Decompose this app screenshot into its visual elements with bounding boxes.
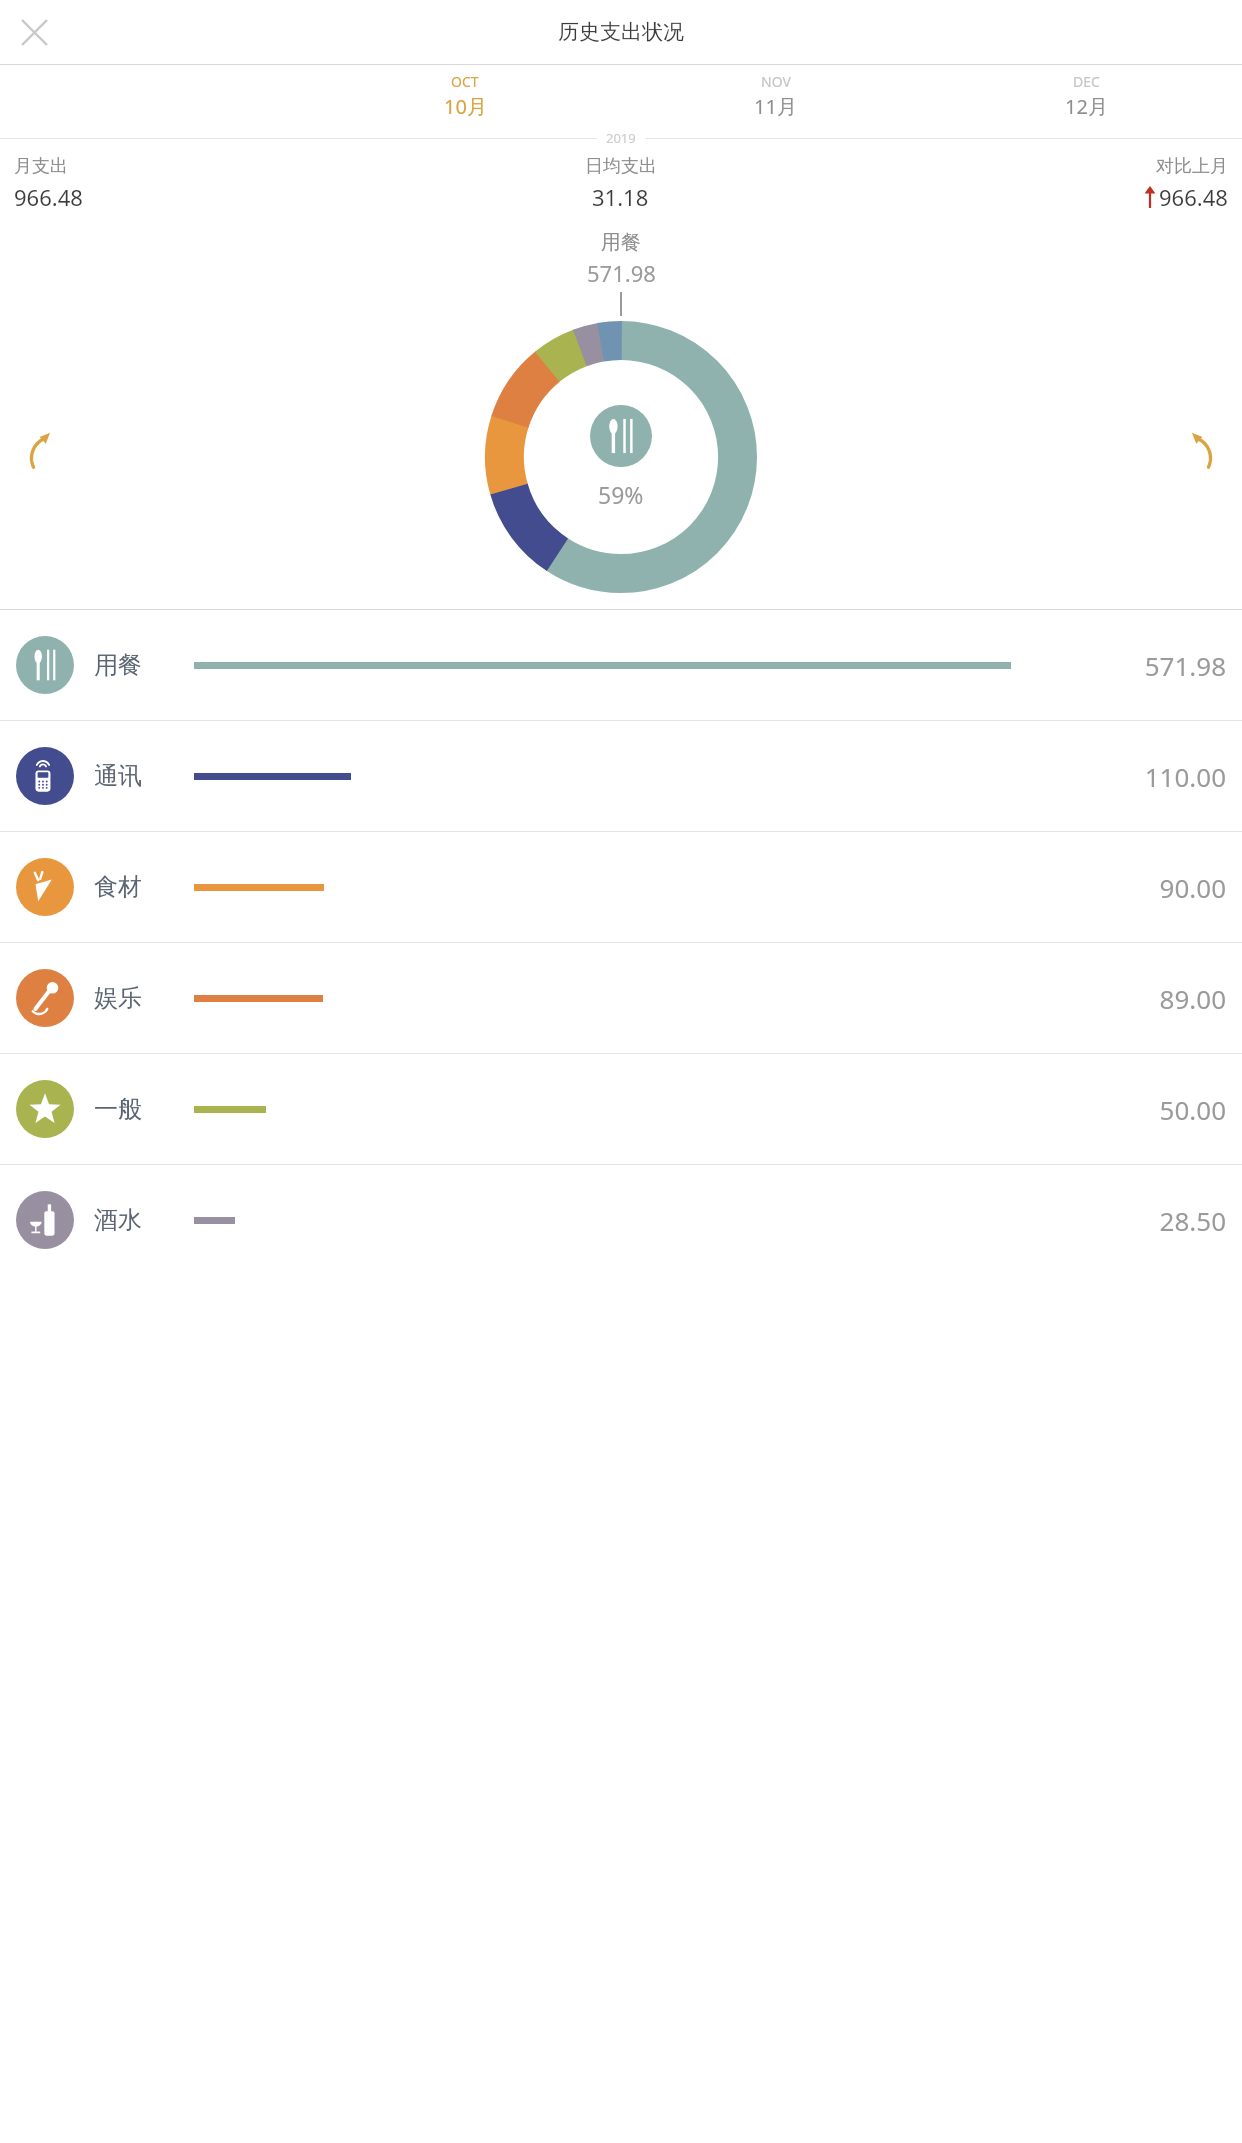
- button[interactable]: DEC: [931, 65, 1242, 127]
- staticText: 12月: [1065, 93, 1108, 120]
- staticText: 用餐: [94, 650, 168, 680]
- staticText: 11月: [754, 93, 797, 120]
- button[interactable]: 娱乐: [0, 943, 1242, 1053]
- staticText: 2019: [606, 129, 636, 147]
- button[interactable]: Previous: [8, 429, 64, 485]
- staticText: 966.48: [14, 182, 83, 212]
- staticText: 89.00: [1159, 981, 1226, 1016]
- staticText: 通讯: [94, 761, 168, 791]
- staticText: 月支出: [14, 155, 68, 178]
- staticText: 50.00: [1159, 1092, 1226, 1127]
- staticText: 一般: [94, 1094, 168, 1124]
- staticText: 966.48: [1159, 182, 1228, 212]
- staticText: 10月: [444, 93, 487, 120]
- button[interactable]: 食材: [0, 832, 1242, 942]
- staticText: 食材: [94, 872, 168, 902]
- staticText: 历史支出状况: [558, 19, 684, 45]
- staticText: 日均支出: [585, 155, 657, 178]
- button[interactable]: Close: [8, 6, 60, 58]
- staticText: 对比上月: [1156, 155, 1228, 178]
- button[interactable]: 一般: [0, 1054, 1242, 1164]
- staticText: NOV: [761, 72, 791, 91]
- staticText: 酒水: [94, 1205, 168, 1235]
- button[interactable]: 通讯: [0, 721, 1242, 831]
- button[interactable]: OCT: [310, 65, 620, 127]
- button[interactable]: NOV: [620, 65, 931, 127]
- button[interactable]: 酒水: [0, 1165, 1242, 1275]
- button[interactable]: 用餐: [0, 610, 1242, 720]
- staticText: 110.00: [1144, 759, 1226, 794]
- staticText: OCT: [451, 72, 479, 91]
- staticText: 娱乐: [94, 983, 168, 1013]
- staticText: 59%: [598, 479, 644, 510]
- staticText: 571.98: [1144, 648, 1226, 683]
- button[interactable]: Next: [1178, 429, 1234, 485]
- staticText: DEC: [1073, 72, 1100, 91]
- staticText: 571.98: [587, 258, 656, 288]
- staticText: 90.00: [1159, 870, 1226, 905]
- staticText: 用餐: [601, 230, 641, 255]
- staticText: 28.50: [1159, 1203, 1226, 1238]
- staticText: 31.18: [592, 182, 649, 212]
